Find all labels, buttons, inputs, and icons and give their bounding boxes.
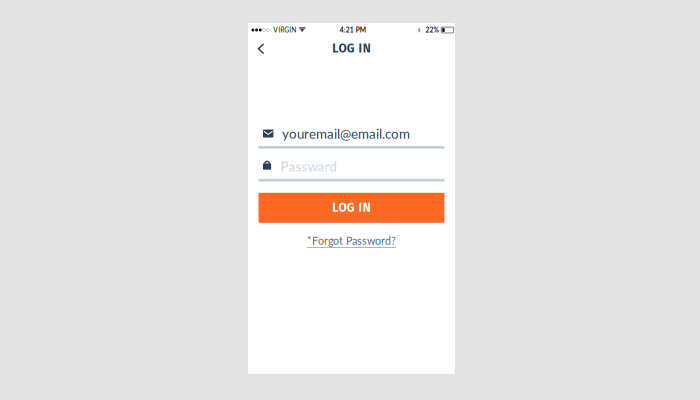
button[interactable]: youremail@email.com xyxy=(258,121,444,149)
staticText: *Forgot Password? xyxy=(307,234,396,247)
button[interactable]: Passward xyxy=(258,154,444,181)
staticText: LOG IN xyxy=(332,41,371,56)
button[interactable]: *Forgot Password? xyxy=(307,232,396,249)
button[interactable]: Back xyxy=(252,37,270,60)
staticText: VIRGIN xyxy=(273,26,296,34)
button[interactable]: LOG IN xyxy=(258,193,444,223)
staticText: 22% xyxy=(426,26,439,34)
staticText: youremail@email.com xyxy=(282,125,410,141)
staticText: 4:21 PM xyxy=(340,26,366,34)
staticText: Passward xyxy=(281,158,337,174)
staticText: LOG IN xyxy=(332,201,371,215)
